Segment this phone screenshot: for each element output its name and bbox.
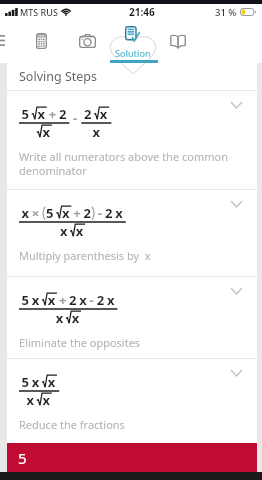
button[interactable]: Textbook <box>167 32 189 50</box>
staticText: Write all numerators above the common de… <box>19 149 228 178</box>
button[interactable]: Calculator <box>31 31 52 51</box>
staticText: MTS RUS <box>20 6 58 18</box>
button[interactable]: Solution <box>110 36 156 74</box>
button[interactable]: Multiply parenthesis by x <box>7 190 257 276</box>
button[interactable]: Camera <box>77 32 98 50</box>
staticText: Solving Steps <box>19 68 97 85</box>
staticText: Multiply parenthesis by x <box>19 248 151 263</box>
button[interactable]: Write all numerators above the common de… <box>7 91 257 189</box>
button[interactable]: Eliminate the opposites <box>7 277 257 358</box>
staticText: Reduce the fractions <box>19 417 125 432</box>
button[interactable]: Reduce the fractions <box>7 359 257 443</box>
staticText: 31 % <box>215 6 237 19</box>
staticText: Eliminate the opposites <box>19 335 141 350</box>
staticText: 21:46 <box>129 5 155 19</box>
button[interactable]: Menu <box>0 32 5 48</box>
staticText: Solution <box>115 47 151 59</box>
staticText: 5 <box>18 448 27 468</box>
